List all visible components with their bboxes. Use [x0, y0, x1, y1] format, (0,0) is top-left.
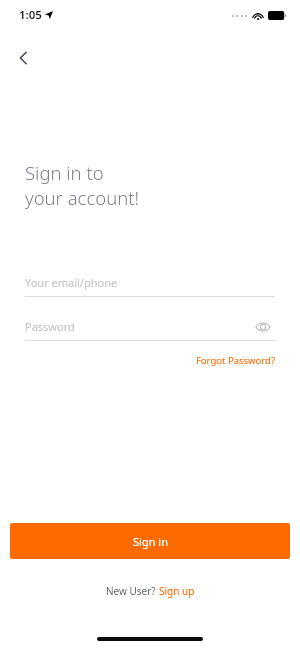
button[interactable]: Forgot Password?: [180, 351, 275, 369]
button[interactable]: Back: [6, 40, 42, 76]
button[interactable]: Sign up: [159, 584, 195, 598]
button[interactable]: Sign in: [10, 523, 290, 559]
staticText: 1:05: [19, 7, 42, 23]
staticText: your account!: [25, 185, 139, 210]
staticText: Sign up: [159, 584, 195, 598]
button[interactable]: Password: [25, 312, 275, 341]
staticText: Password: [25, 319, 75, 334]
staticText: Your email/phone: [25, 275, 118, 290]
button[interactable]: Show password: [251, 315, 275, 339]
staticText: Sign in: [133, 534, 168, 549]
staticText: New User?: [106, 584, 159, 598]
staticText: Forgot Password?: [195, 354, 275, 367]
button[interactable]: Your email/phone: [25, 268, 275, 297]
staticText: Sign in to: [25, 160, 104, 185]
